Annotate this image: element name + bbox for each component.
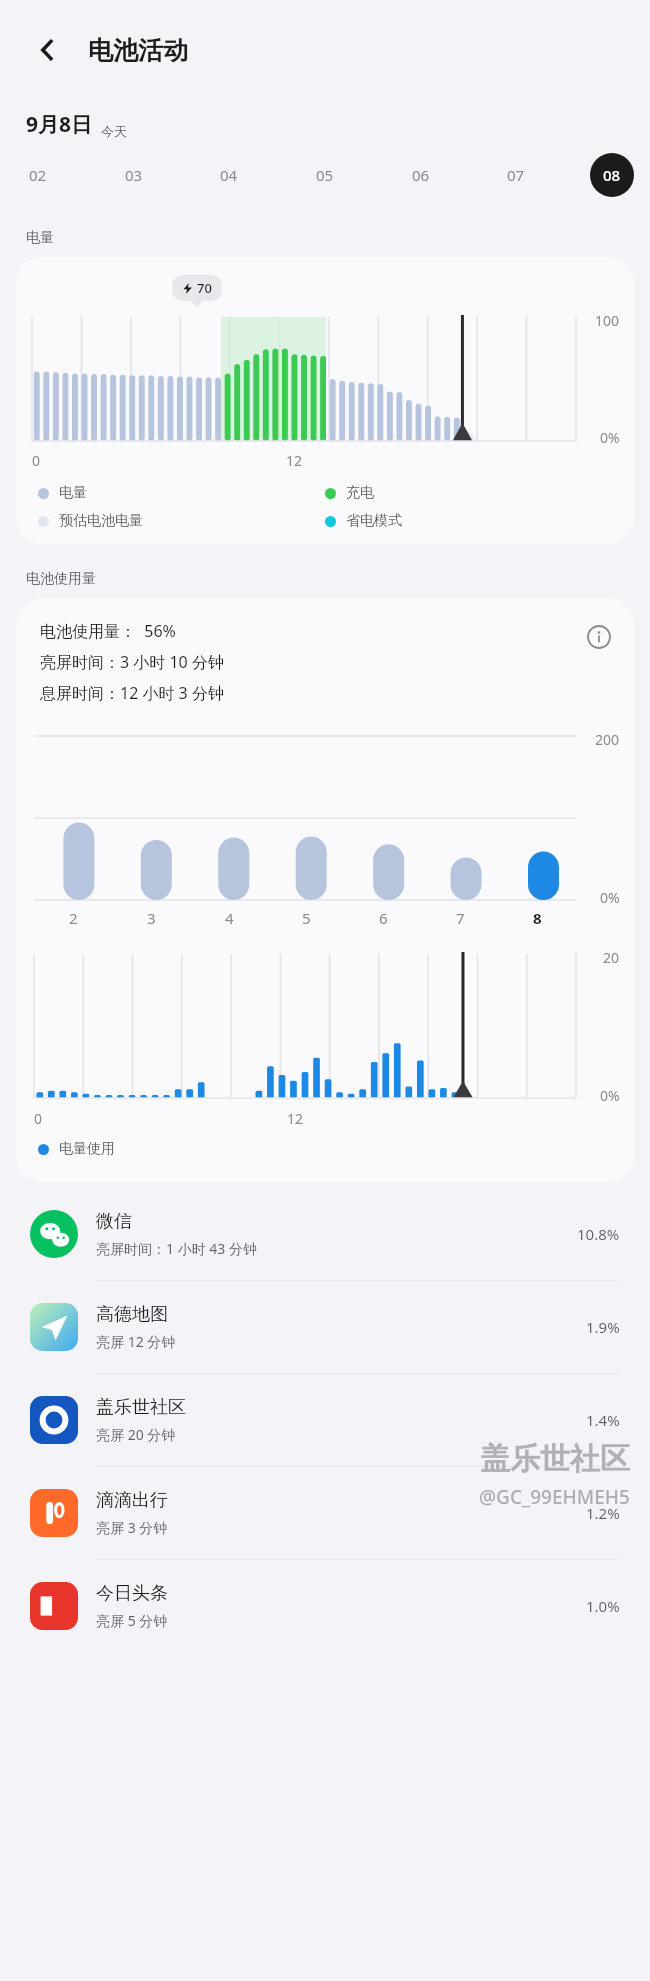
staticText: 9月8日: [26, 110, 93, 139]
button[interactable]: 盖乐世社区: [16, 1374, 634, 1466]
staticText: 电量: [59, 484, 87, 502]
staticText: 电池活动: [88, 35, 188, 66]
staticText: 07: [507, 165, 525, 185]
button[interactable]: 08: [590, 153, 634, 197]
staticText: 10.8%: [577, 1224, 620, 1244]
staticText: 亮屏 20 分钟: [96, 1425, 176, 1444]
staticText: 亮屏时间：1 小时 43 分钟: [96, 1239, 257, 1258]
button[interactable]: 70: [16, 257, 634, 544]
staticText: 5: [302, 908, 311, 928]
staticText: 70: [197, 279, 212, 297]
staticText: 20: [603, 948, 620, 967]
staticText: 200: [595, 730, 620, 749]
staticText: 0%: [600, 428, 620, 447]
button[interactable]: 04: [207, 153, 251, 197]
staticText: 0: [34, 1109, 43, 1128]
staticText: 03: [125, 165, 143, 185]
button[interactable]: 03: [112, 153, 156, 197]
staticText: 12: [287, 1109, 304, 1128]
staticText: 亮屏 12 分钟: [96, 1332, 176, 1351]
staticText: 电量: [26, 229, 54, 247]
button[interactable]: 06: [399, 153, 443, 197]
staticText: 省电模式: [346, 512, 402, 530]
staticText: 08: [603, 165, 621, 185]
button[interactable]: 02: [16, 153, 60, 197]
staticText: 1.4%: [586, 1410, 620, 1430]
staticText: 02: [29, 165, 47, 185]
staticText: 3: [147, 908, 156, 928]
staticText: 0%: [600, 888, 620, 907]
staticText: 盖乐世社区: [96, 1396, 186, 1419]
staticText: 充电: [346, 484, 374, 502]
staticText: 今天: [101, 123, 127, 139]
staticText: 04: [220, 165, 238, 185]
staticText: 亮屏 3 分钟: [96, 1518, 168, 1537]
staticText: 今日头条: [96, 1582, 168, 1605]
staticText: 电量使用: [59, 1140, 115, 1158]
button[interactable]: Back: [22, 24, 74, 76]
staticText: 盖乐世社区: [480, 1440, 630, 1478]
staticText: 预估电池电量: [59, 512, 143, 530]
staticText: 电池使用量: [26, 570, 96, 588]
staticText: 05: [316, 165, 334, 185]
staticText: 6: [379, 908, 388, 928]
staticText: 1.0%: [586, 1596, 620, 1616]
button[interactable]: 高德地图: [16, 1281, 634, 1373]
staticText: 微信: [96, 1210, 132, 1233]
button[interactable]: Info: [582, 620, 616, 654]
staticText: 100: [595, 311, 620, 330]
staticText: 12: [286, 451, 303, 470]
staticText: 8: [533, 908, 542, 928]
button[interactable]: 微信: [16, 1188, 634, 1280]
button[interactable]: 05: [303, 153, 347, 197]
staticText: 0%: [600, 1086, 620, 1105]
staticText: 滴滴出行: [96, 1489, 168, 1512]
staticText: 0: [32, 451, 41, 470]
staticText: 亮屏时间：3 小时 10 分钟: [40, 651, 224, 673]
staticText: 06: [412, 165, 430, 185]
staticText: 1.2%: [586, 1503, 620, 1523]
staticText: 2: [69, 908, 78, 928]
button[interactable]: 今日头条: [16, 1560, 634, 1652]
staticText: 电池使用量： 56%: [40, 620, 176, 642]
button[interactable]: 滴滴出行: [16, 1467, 634, 1559]
staticText: 高德地图: [96, 1303, 168, 1326]
staticText: 亮屏 5 分钟: [96, 1611, 168, 1630]
staticText: 7: [456, 908, 465, 928]
staticText: 4: [225, 908, 234, 928]
button[interactable]: 07: [494, 153, 538, 197]
staticText: 息屏时间：12 小时 3 分钟: [40, 682, 224, 704]
staticText: @GC_99EHMEH5: [479, 1484, 630, 1510]
staticText: 1.9%: [586, 1317, 620, 1337]
